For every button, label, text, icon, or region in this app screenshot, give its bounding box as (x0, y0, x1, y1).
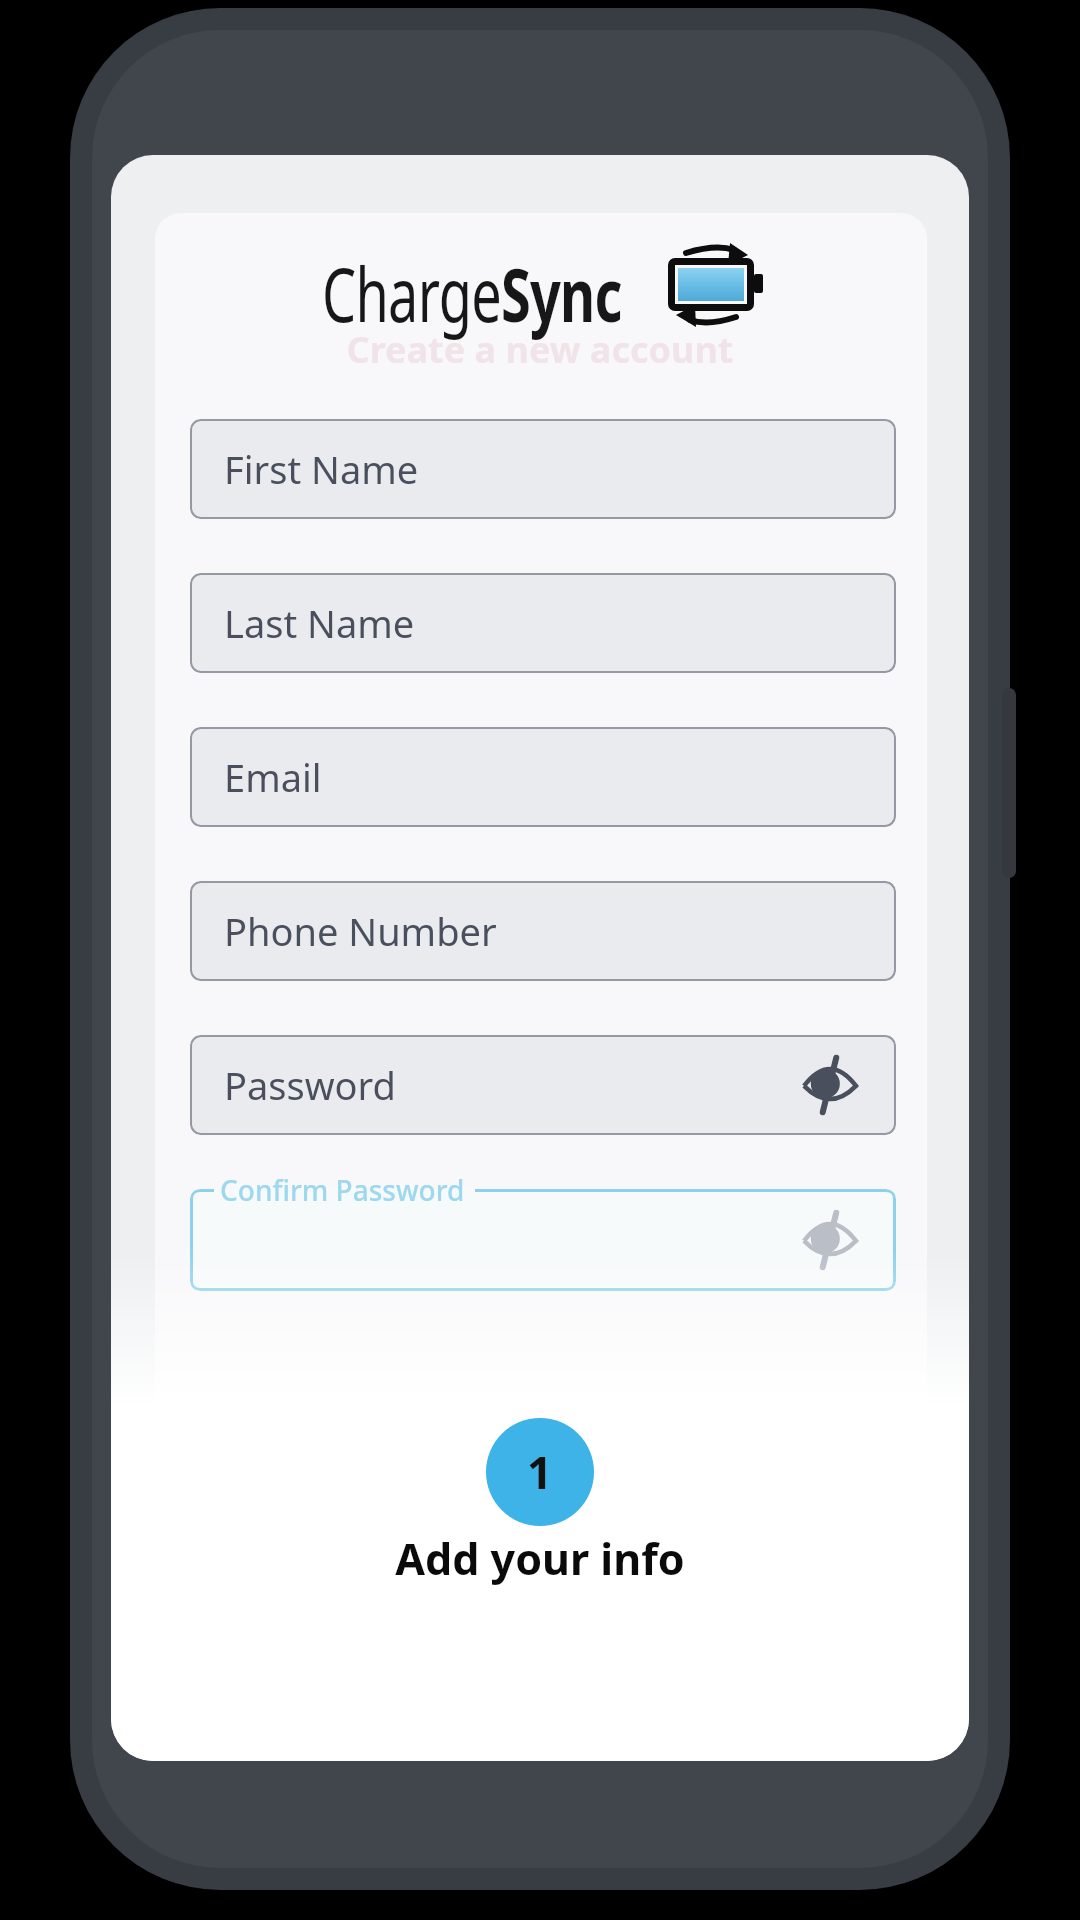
staticText: Phone Number (224, 905, 497, 957)
button[interactable]: Email (190, 727, 896, 827)
button[interactable]: Last Name (190, 573, 896, 673)
button[interactable]: 1 (486, 1418, 594, 1526)
staticText: Email (224, 751, 322, 803)
staticText: 1 (527, 1442, 553, 1502)
staticText: Password (224, 1059, 396, 1111)
button[interactable]: Phone Number (190, 881, 896, 981)
button[interactable] (190, 1189, 896, 1291)
button[interactable]: Password (190, 1035, 896, 1135)
staticText: Create a new account (111, 325, 969, 374)
staticText: ChargeSync (322, 243, 622, 344)
staticText: First Name (224, 443, 419, 495)
staticText: Add your info (111, 1529, 969, 1588)
staticText: Last Name (224, 597, 415, 649)
staticText: Confirm Password (220, 1171, 465, 1209)
button[interactable]: First Name (190, 419, 896, 519)
